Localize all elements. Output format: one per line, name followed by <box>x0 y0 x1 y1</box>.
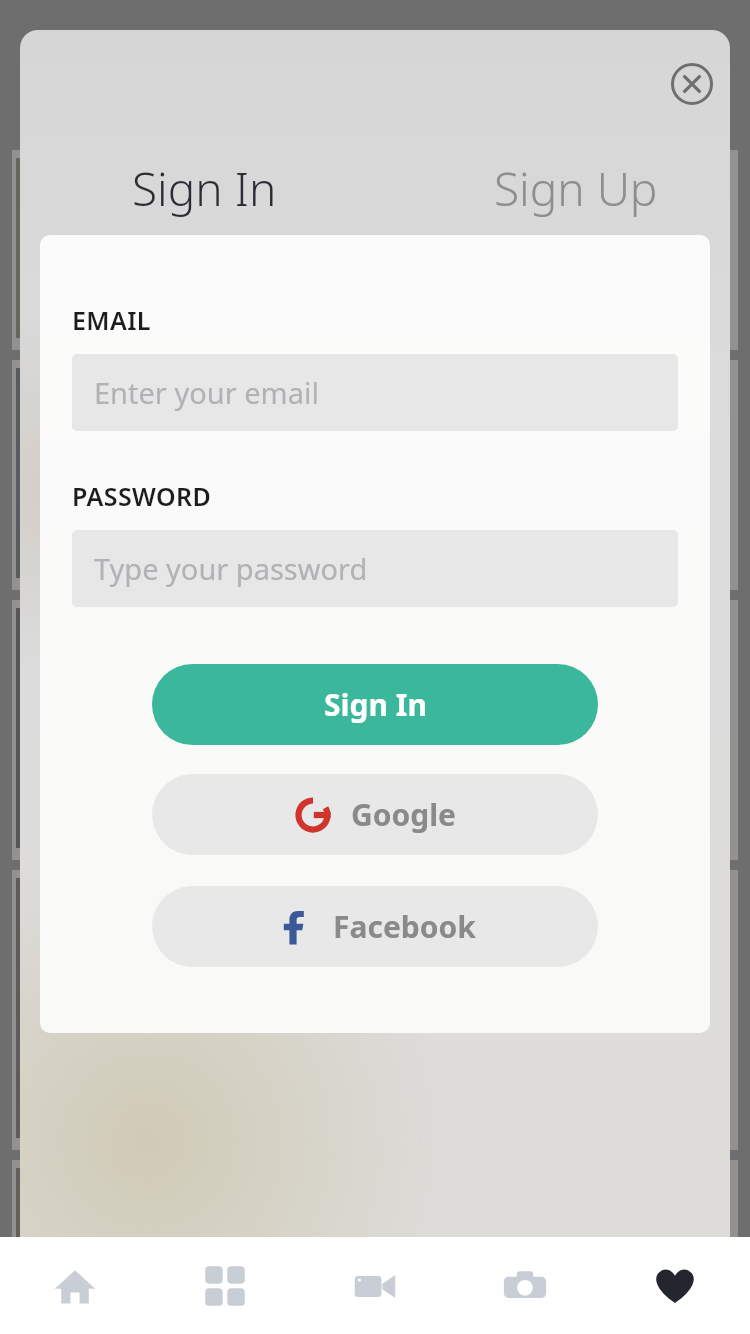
button[interactable]: Sign In <box>132 150 312 226</box>
button[interactable]: Video <box>300 1237 450 1334</box>
staticText: Sign Up <box>494 157 658 220</box>
button[interactable]: Enter your email <box>72 354 678 431</box>
button[interactable]: Facebook <box>152 886 598 967</box>
button[interactable]: Camera <box>450 1237 600 1334</box>
button[interactable]: Home <box>0 1237 150 1334</box>
staticText: Type your password <box>94 549 368 588</box>
button[interactable]: Google <box>152 774 598 855</box>
button[interactable]: Close <box>666 58 718 110</box>
staticText: Google <box>351 794 457 835</box>
staticText: Facebook <box>333 906 476 947</box>
button[interactable]: Sign Up <box>494 150 694 226</box>
button[interactable]: Favorites <box>600 1237 750 1334</box>
staticText: Sign In <box>132 157 277 220</box>
button[interactable]: Sign In <box>152 664 598 745</box>
button[interactable]: Explore <box>150 1237 300 1334</box>
staticText: PASSWORD <box>72 479 212 513</box>
button[interactable]: Type your password <box>72 530 678 607</box>
staticText: EMAIL <box>72 303 151 337</box>
staticText: Enter your email <box>94 373 319 412</box>
staticText: Sign In <box>324 684 427 725</box>
